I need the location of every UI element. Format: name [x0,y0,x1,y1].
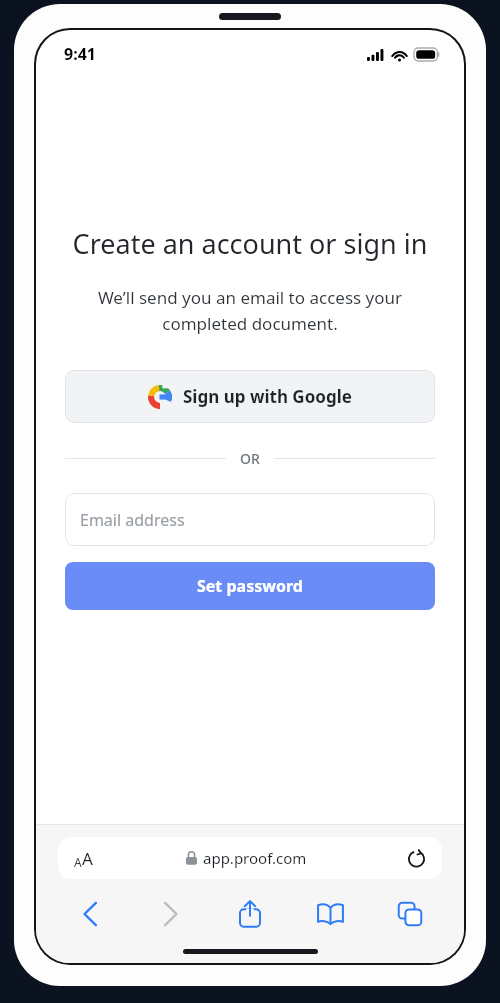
button[interactable]: Share [210,893,290,935]
button[interactable]: Tabs [370,893,450,935]
staticText: A [74,854,82,870]
button[interactable]: A [58,837,442,879]
staticText: Create an account or sign in [36,225,464,262]
button[interactable]: Back [50,893,130,935]
button[interactable]: Reload page [401,843,432,874]
button[interactable]: Bookmarks [290,893,370,935]
staticText: 9:41 [64,43,96,65]
staticText: OR [240,449,260,468]
staticText: Set password [197,575,303,597]
button[interactable]: Sign up with Google [65,370,435,423]
staticText: Sign up with Google [183,385,352,408]
button[interactable]: Email address [65,493,435,546]
staticText: We’ll send you an email to access your c… [36,286,464,335]
staticText: A [82,847,93,870]
button[interactable]: Forward [130,893,210,935]
staticText: Email address [80,509,185,531]
staticText: app.proof.com [203,848,307,868]
button[interactable]: Set password [65,562,435,610]
